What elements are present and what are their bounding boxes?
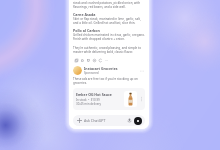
staticText: Pollo al Carbon <box>73 28 100 33</box>
staticText: 30-45 min delivery <box>76 102 101 106</box>
staticText: Sponsored <box>84 71 99 75</box>
button[interactable]: Add attachment <box>73 115 145 126</box>
button[interactable]: Add attachment <box>76 117 83 124</box>
staticText: Carne Asada <box>73 12 96 17</box>
staticText: Ember OG Hot Sauce <box>76 92 112 97</box>
staticText: Instacart Groceries <box>84 66 118 71</box>
button[interactable]: Regenerate <box>98 58 103 63</box>
button[interactable]: Like <box>80 58 85 63</box>
button[interactable]: Dislike <box>86 58 91 63</box>
other: Instacart <box>73 66 82 75</box>
staticText: Skirt or flap steak, marinated in lime, … <box>73 17 145 25</box>
staticText: In stock • $10.99 <box>76 98 100 102</box>
button[interactable]: Copy <box>74 58 79 63</box>
staticText: Ask ChatGPT <box>84 118 106 123</box>
button[interactable]: Dictate <box>134 117 142 125</box>
button[interactable]: Voice input <box>126 117 133 124</box>
button[interactable]: Instacart <box>73 66 145 75</box>
staticText: steak and crushed potatoes, pickled onio… <box>73 1 145 9</box>
button[interactable]: Ember OG Hot Sauce <box>73 88 145 110</box>
button[interactable]: Ad options <box>139 68 145 74</box>
staticText: Grilled chicken marinated in citrus, gar… <box>73 33 145 41</box>
button[interactable]: Product options <box>139 94 143 104</box>
staticText: These ads are free too if you're stockin… <box>73 77 145 85</box>
button[interactable]: Read aloud <box>92 58 97 63</box>
staticText: They're authentic, crowd pleasing, and s… <box>73 46 145 54</box>
button[interactable]: More <box>104 58 109 63</box>
